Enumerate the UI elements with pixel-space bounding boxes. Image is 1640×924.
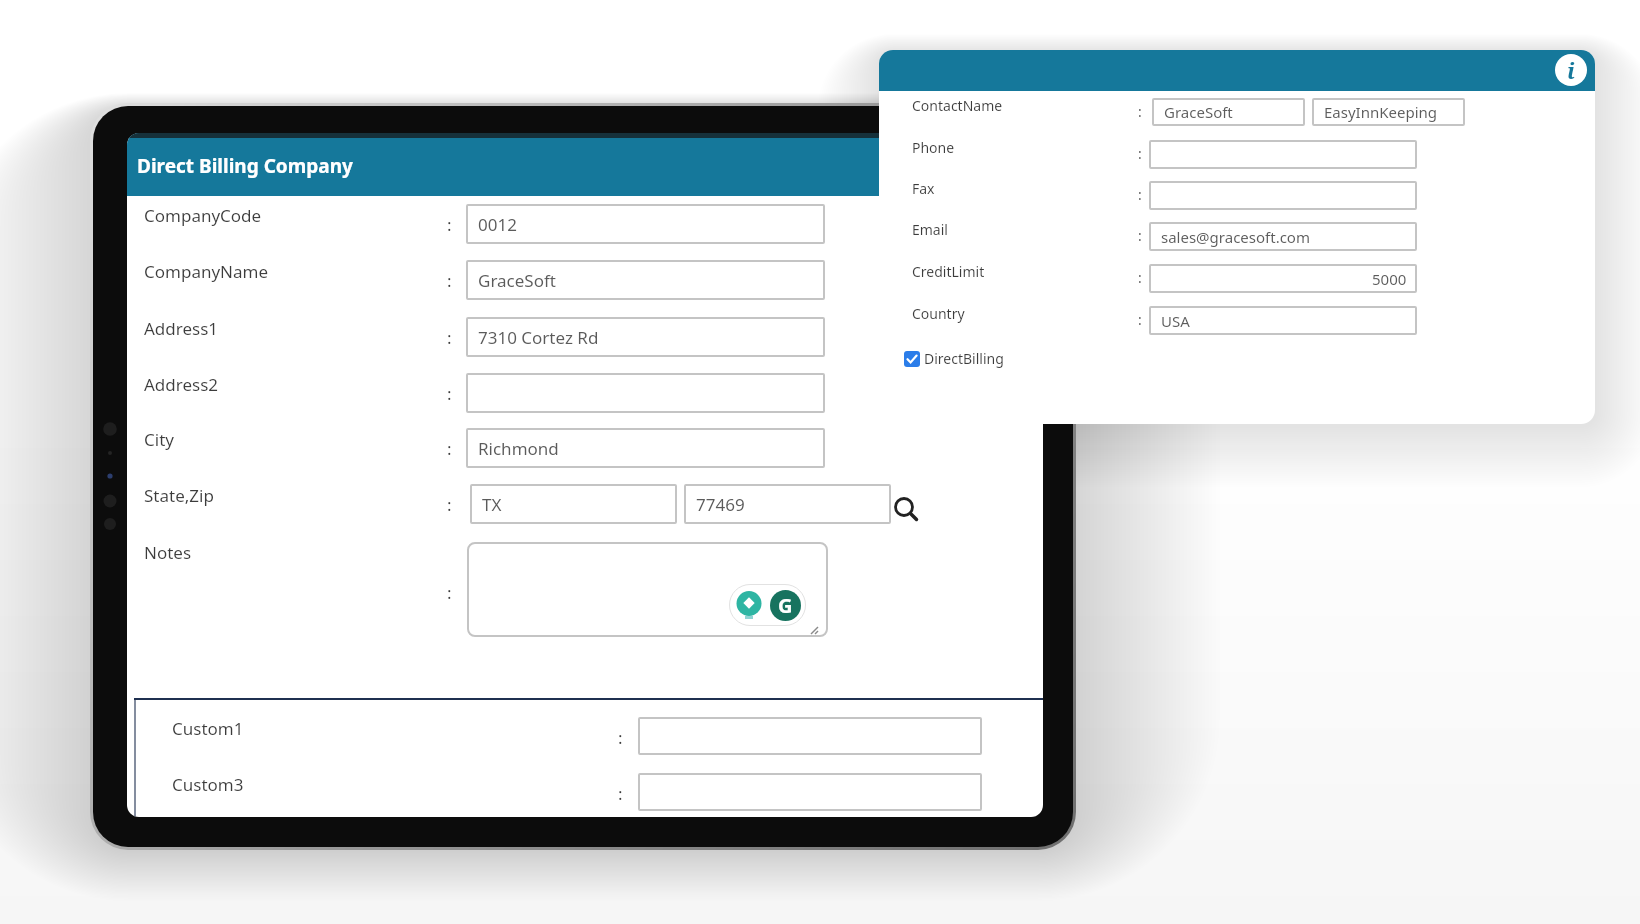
staticText: CompanyName xyxy=(144,260,269,283)
staticText: City xyxy=(144,428,174,451)
staticText: i xyxy=(1567,55,1575,85)
staticText: : xyxy=(447,581,452,604)
button[interactable] xyxy=(638,773,982,811)
button[interactable] xyxy=(892,495,922,525)
button[interactable]: 7310 Cortez Rd xyxy=(466,317,825,357)
staticText: 77469 xyxy=(696,493,745,516)
staticText: GraceSoft xyxy=(1164,102,1233,122)
button[interactable] xyxy=(1149,181,1417,210)
staticText: Country xyxy=(912,304,965,323)
button[interactable]: sales@gracesoft.com xyxy=(1149,222,1417,251)
button[interactable]: Richmond xyxy=(466,428,825,468)
staticText: : xyxy=(1138,268,1142,287)
staticText: State,Zip xyxy=(144,484,214,507)
staticText: TX xyxy=(482,493,502,516)
staticText: Address2 xyxy=(144,373,219,396)
staticText: DirectBilling xyxy=(924,349,1004,368)
staticText: Direct Billing Company xyxy=(137,153,353,179)
staticText: : xyxy=(447,493,452,516)
staticText: GraceSoft xyxy=(478,269,556,292)
staticText: CompanyCode xyxy=(144,204,262,227)
staticText: CreditLimit xyxy=(912,262,985,281)
staticText: EasyInnKeeping xyxy=(1324,102,1438,122)
button[interactable] xyxy=(638,717,982,755)
button[interactable]: USA xyxy=(1149,306,1417,335)
staticText: : xyxy=(1138,144,1142,163)
button[interactable]: TX xyxy=(470,484,677,524)
staticText: G xyxy=(778,592,793,619)
button[interactable]: 0012 xyxy=(466,204,825,244)
staticText: : xyxy=(447,437,452,460)
staticText: Fax xyxy=(912,179,935,198)
staticText: : xyxy=(447,269,452,292)
button[interactable]: 77469 xyxy=(684,484,891,524)
staticText: : xyxy=(1138,226,1142,245)
staticText: 0012 xyxy=(478,213,517,236)
staticText: ContactName xyxy=(912,96,1003,115)
staticText: : xyxy=(618,782,623,805)
staticText: : xyxy=(447,213,452,236)
staticText: Notes xyxy=(144,541,192,564)
staticText: Email xyxy=(912,220,948,239)
staticText: : xyxy=(447,382,452,405)
staticText: : xyxy=(618,726,623,749)
staticText: Address1 xyxy=(144,317,219,340)
button[interactable]: G xyxy=(770,590,801,621)
button[interactable]: 5000 xyxy=(1149,264,1417,293)
button[interactable]: GraceSoft xyxy=(1152,98,1305,126)
staticText: : xyxy=(1138,102,1142,121)
staticText: : xyxy=(447,326,452,349)
staticText: Custom1 xyxy=(172,717,244,740)
staticText: sales@gracesoft.com xyxy=(1161,227,1310,247)
staticText: Richmond xyxy=(478,437,559,460)
staticText: Custom3 xyxy=(172,773,244,796)
button[interactable]: GraceSoft xyxy=(466,260,825,300)
button[interactable]: EasyInnKeeping xyxy=(1312,98,1465,126)
staticText: 7310 Cortez Rd xyxy=(478,326,599,349)
staticText: Phone xyxy=(912,138,955,157)
staticText: USA xyxy=(1161,311,1190,331)
button[interactable]: i xyxy=(1555,54,1587,86)
button[interactable] xyxy=(904,351,920,367)
staticText: : xyxy=(1138,310,1142,329)
staticText: 5000 xyxy=(1372,269,1407,289)
button[interactable] xyxy=(736,591,764,619)
button[interactable] xyxy=(1149,140,1417,169)
staticText: : xyxy=(1138,185,1142,204)
button[interactable] xyxy=(466,373,825,413)
